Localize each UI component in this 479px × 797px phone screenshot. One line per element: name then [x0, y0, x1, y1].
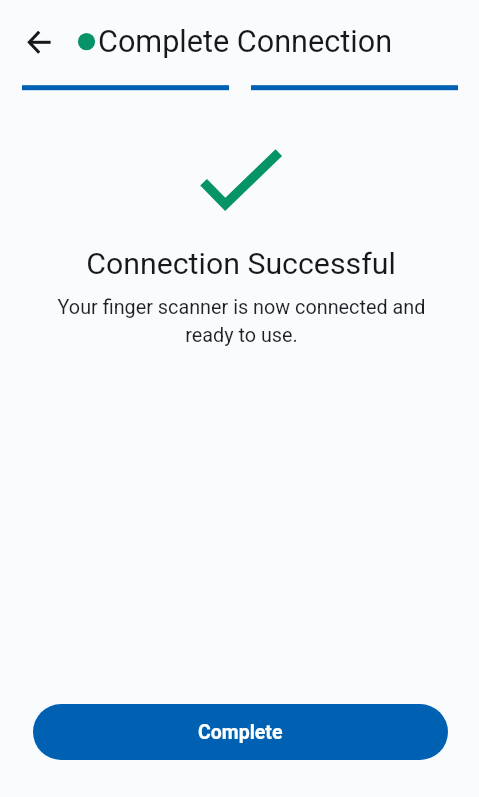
button[interactable]: Back — [16, 18, 64, 66]
staticText: Complete Connection — [98, 24, 393, 60]
staticText: Your finger scanner is now connected and… — [44, 296, 439, 347]
staticText: Complete — [198, 721, 283, 744]
button[interactable]: Complete — [33, 704, 448, 760]
staticText: Connection Successful — [3, 246, 479, 282]
